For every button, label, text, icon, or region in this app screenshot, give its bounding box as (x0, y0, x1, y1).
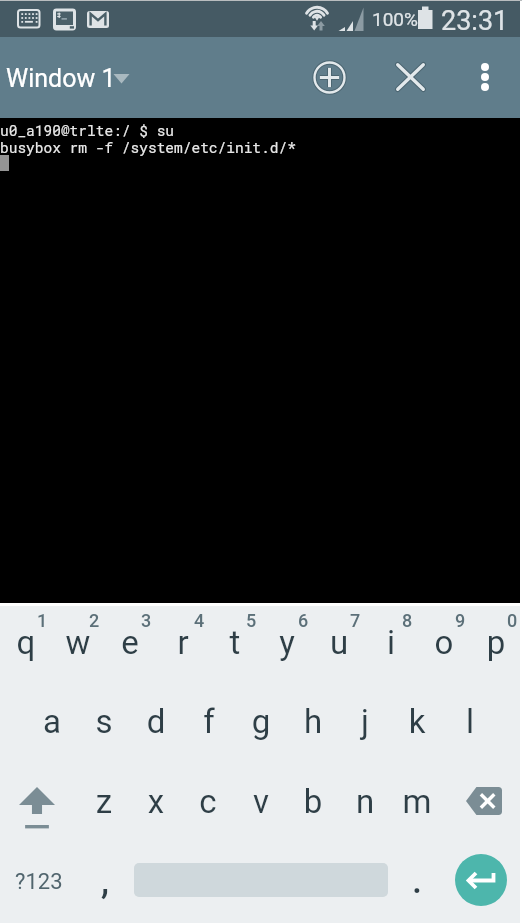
staticText: c (182, 782, 234, 821)
staticText: 3 (133, 610, 159, 631)
staticText: 1 (29, 610, 55, 631)
staticText: x (130, 782, 182, 821)
button[interactable]: New window (303, 51, 355, 103)
staticText: e (104, 623, 156, 662)
button[interactable]: n (339, 766, 391, 846)
button[interactable]: 4 (157, 606, 209, 686)
staticText: 9 (447, 610, 473, 631)
staticText: 23:31 (441, 5, 509, 37)
button[interactable]: x (130, 766, 182, 846)
staticText: n (339, 782, 391, 821)
staticText: g (235, 702, 287, 741)
staticText: d (130, 702, 182, 741)
staticText: 100% (372, 8, 418, 30)
staticText: Window 1 (6, 64, 116, 93)
button[interactable]: Enter (455, 854, 507, 906)
staticText: i (365, 623, 417, 662)
staticText: f (183, 702, 235, 741)
staticText: 5 (238, 610, 264, 631)
button[interactable]: z (78, 766, 130, 846)
button[interactable]: s (78, 686, 130, 766)
staticText: , (101, 860, 109, 902)
button[interactable]: m (391, 766, 443, 846)
staticText: 0 (499, 610, 522, 631)
button[interactable]: h (287, 686, 339, 766)
button[interactable]: 5 (209, 606, 261, 686)
button[interactable]: Backspace (444, 766, 522, 846)
button[interactable]: j (339, 686, 391, 766)
staticText: q (0, 623, 52, 662)
staticText: 7 (342, 610, 368, 631)
staticText: v (235, 782, 287, 821)
button[interactable]: . (390, 846, 442, 920)
staticText: b (287, 782, 339, 821)
staticText: 4 (186, 610, 212, 631)
staticText: u (313, 623, 365, 662)
staticText: w (52, 623, 104, 662)
staticText: a (26, 702, 78, 741)
button[interactable]: 7 (313, 606, 365, 686)
staticText: . (412, 860, 423, 902)
button[interactable]: 8 (365, 606, 417, 686)
button[interactable]: 6 (261, 606, 313, 686)
button[interactable]: l (444, 686, 496, 766)
button[interactable]: f (183, 686, 235, 766)
button[interactable]: , (78, 846, 130, 920)
staticText: o (418, 623, 470, 662)
button[interactable]: b (287, 766, 339, 846)
staticText: t (209, 623, 261, 662)
staticText: busybox rm -f /system/etc/init.d/* (0, 138, 296, 157)
staticText: 6 (290, 610, 316, 631)
button[interactable]: v (235, 766, 287, 846)
staticText: m (391, 782, 443, 821)
button[interactable]: More options (461, 53, 509, 101)
staticText: r (157, 623, 209, 662)
button[interactable]: 2 (52, 606, 104, 686)
staticText: j (339, 702, 391, 741)
button[interactable]: d (130, 686, 182, 766)
button[interactable]: k (391, 686, 443, 766)
button[interactable]: g (235, 686, 287, 766)
staticText: ?123 (15, 869, 63, 895)
button[interactable]: Close window (384, 51, 436, 103)
staticText: l (444, 702, 496, 741)
button[interactable]: 1 (0, 606, 52, 686)
staticText: u0_a190@trlte:/ $ su (0, 121, 175, 140)
button[interactable]: Window 1 (0, 59, 143, 97)
staticText: z (78, 782, 130, 821)
staticText: 2 (81, 610, 107, 631)
button[interactable]: 9 (418, 606, 470, 686)
button[interactable]: c (182, 766, 234, 846)
button[interactable]: Shift (0, 766, 78, 846)
staticText: s (78, 702, 130, 741)
staticText: k (391, 702, 443, 741)
staticText: p (470, 623, 522, 662)
button[interactable]: 0 (470, 606, 522, 686)
button[interactable]: 3 (104, 606, 156, 686)
staticText: h (287, 702, 339, 741)
button[interactable]: a (26, 686, 78, 766)
button[interactable]: ?123 (0, 846, 78, 920)
staticText: 8 (394, 610, 420, 631)
staticText: y (261, 623, 313, 662)
